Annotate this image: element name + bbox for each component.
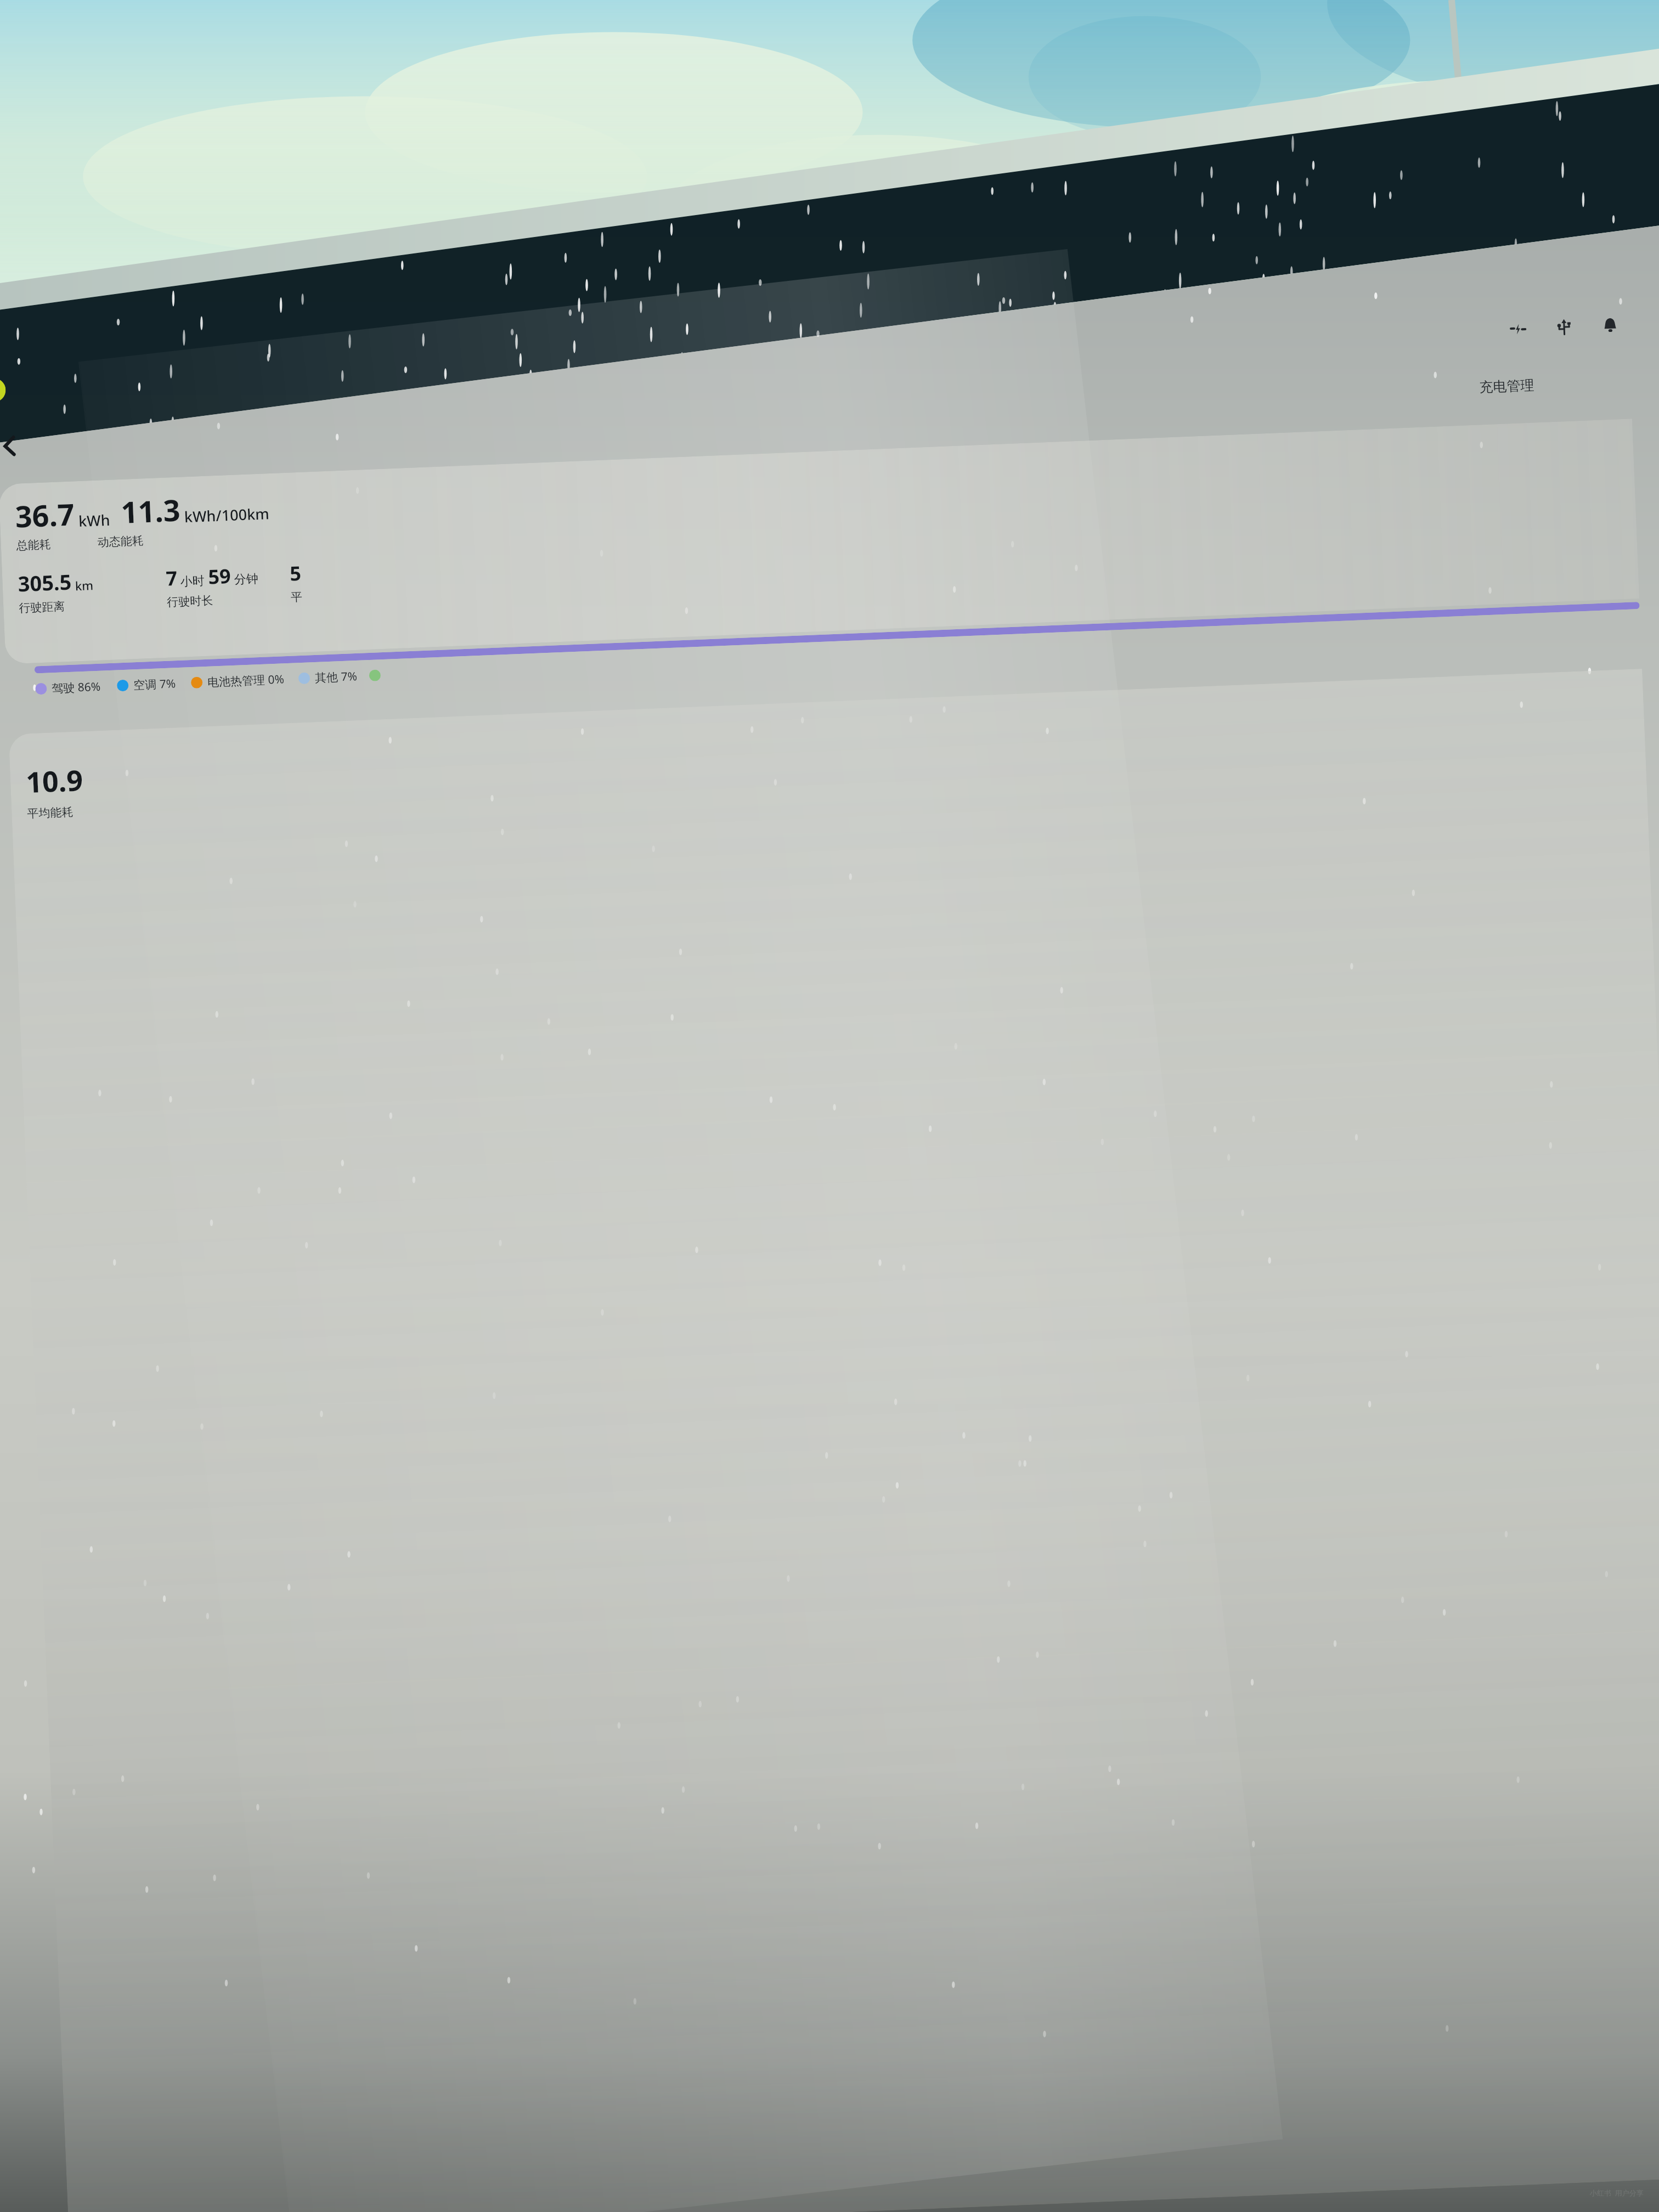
button[interactable]: 10.9 xyxy=(9,669,1659,2212)
button[interactable]: Notifications xyxy=(1597,312,1623,338)
button[interactable]: Charging status xyxy=(1505,316,1531,342)
button[interactable]: 其他 7% xyxy=(298,668,357,686)
staticText: 电池热管理 0% xyxy=(207,671,285,690)
staticText: 驾驶 86% xyxy=(51,678,101,696)
staticText: 5 xyxy=(289,560,302,587)
staticText: 36.7 xyxy=(14,493,75,536)
staticText: km xyxy=(75,577,94,594)
staticText: kWh xyxy=(78,510,111,531)
staticText: 分钟 xyxy=(234,571,259,587)
staticText: 空调 7% xyxy=(133,675,176,693)
staticText: 11.3 xyxy=(120,489,181,532)
staticText: 其他 7% xyxy=(315,668,357,686)
button[interactable]: 36.7 xyxy=(0,419,1639,664)
staticText: 总能耗 xyxy=(16,537,51,553)
staticText: 305.5 xyxy=(17,567,72,598)
staticText: 7 xyxy=(165,564,178,592)
button[interactable]: 电池热管理 0% xyxy=(191,671,284,691)
button[interactable]: 驾驶 86% xyxy=(35,678,101,697)
staticText: 充电管理 xyxy=(1479,377,1534,396)
button[interactable]: 空调 7% xyxy=(117,675,176,694)
staticText: 10.9 xyxy=(25,760,84,801)
staticText: 小时 xyxy=(180,573,205,590)
staticText: kWh/100km xyxy=(184,503,270,527)
staticText: 动态能耗 xyxy=(97,533,144,550)
staticText: 行驶距离 xyxy=(19,599,65,615)
staticText: 平 xyxy=(290,590,303,604)
button[interactable]: Back xyxy=(0,427,28,465)
button[interactable]: USB xyxy=(1551,314,1577,340)
staticText: 行驶时长 xyxy=(167,593,213,609)
staticText: 平均能耗 xyxy=(27,805,73,821)
staticText: 小红书 用户分享 xyxy=(1590,2188,1644,2198)
button[interactable]: 钟 xyxy=(0,378,6,404)
staticText: 59 xyxy=(208,562,232,590)
